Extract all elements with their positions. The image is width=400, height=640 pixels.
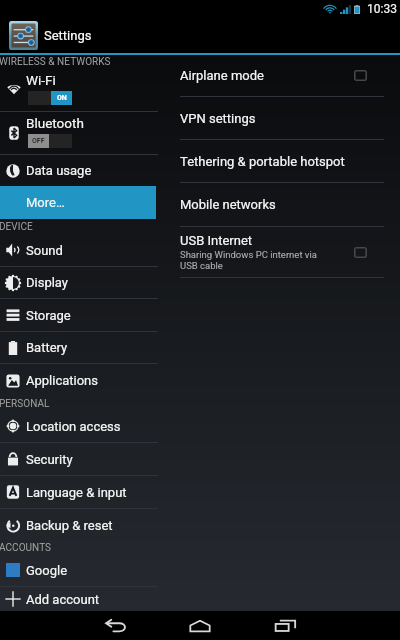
staticText: Backup & reset: [26, 518, 113, 533]
button[interactable]: Google: [0, 554, 160, 586]
staticText: Wi-Fi: [26, 72, 56, 88]
staticText: USB Internet: [180, 233, 253, 248]
button[interactable]: Back: [95, 611, 135, 640]
button[interactable]: USB Internet: [160, 227, 400, 277]
button[interactable]: VPN settings: [160, 97, 400, 139]
staticText: ACCOUNTS: [0, 542, 52, 554]
staticText: WIRELESS & NETWORKS: [0, 56, 111, 68]
staticText: Storage: [26, 308, 71, 323]
staticText: Add account: [26, 592, 100, 607]
button[interactable]: Applications: [0, 364, 160, 397]
button[interactable]: More…: [0, 186, 156, 219]
button[interactable]: OFF: [28, 134, 72, 148]
button[interactable]: Security: [0, 443, 160, 475]
staticText: Mobile networks: [180, 197, 367, 212]
staticText: 10:33: [367, 2, 397, 16]
button[interactable]: Home: [180, 611, 220, 640]
button[interactable]: Location access: [0, 410, 160, 442]
button[interactable]: Add account: [0, 587, 160, 611]
button[interactable]: Recent apps: [265, 611, 305, 640]
staticText: Language & input: [26, 485, 127, 500]
button[interactable]: Mobile networks: [160, 183, 400, 226]
staticText: Battery: [26, 340, 68, 355]
staticText: Security: [26, 452, 73, 467]
button[interactable]: Tethering & portable hotspot: [160, 140, 400, 182]
staticText: Applications: [26, 373, 98, 388]
staticText: Data usage: [26, 163, 92, 178]
button[interactable]: Wi-Fi: [0, 69, 160, 111]
button[interactable]: Airplane mode: [160, 55, 400, 96]
staticText: DEVICE: [0, 221, 33, 233]
staticText: Sharing Windows PC internet via USB cabl…: [180, 249, 317, 271]
staticText: Airplane mode: [180, 68, 354, 83]
button[interactable]: Bluetooth: [0, 112, 160, 154]
staticText: Tethering & portable hotspot: [180, 154, 367, 169]
staticText: Settings: [44, 28, 92, 43]
staticText: ON: [57, 94, 67, 102]
staticText: Display: [26, 275, 68, 290]
button[interactable]: Settings: [9, 21, 92, 50]
button[interactable]: ON: [28, 91, 72, 105]
button[interactable]: Data usage: [0, 155, 160, 186]
staticText: VPN settings: [180, 111, 367, 126]
staticText: Google: [26, 563, 68, 578]
staticText: More…: [26, 195, 65, 210]
staticText: Sound: [26, 243, 63, 258]
button[interactable]: Sound: [0, 234, 160, 266]
staticText: OFF: [32, 137, 45, 145]
staticText: Location access: [26, 419, 121, 434]
button[interactable]: Display: [0, 267, 160, 298]
staticText: Bluetooth: [26, 115, 84, 131]
button[interactable]: Battery: [0, 332, 160, 363]
button[interactable]: Storage: [0, 299, 160, 331]
button[interactable]: Language & input: [0, 476, 160, 508]
button[interactable]: Backup & reset: [0, 509, 160, 542]
staticText: PERSONAL: [0, 398, 50, 410]
